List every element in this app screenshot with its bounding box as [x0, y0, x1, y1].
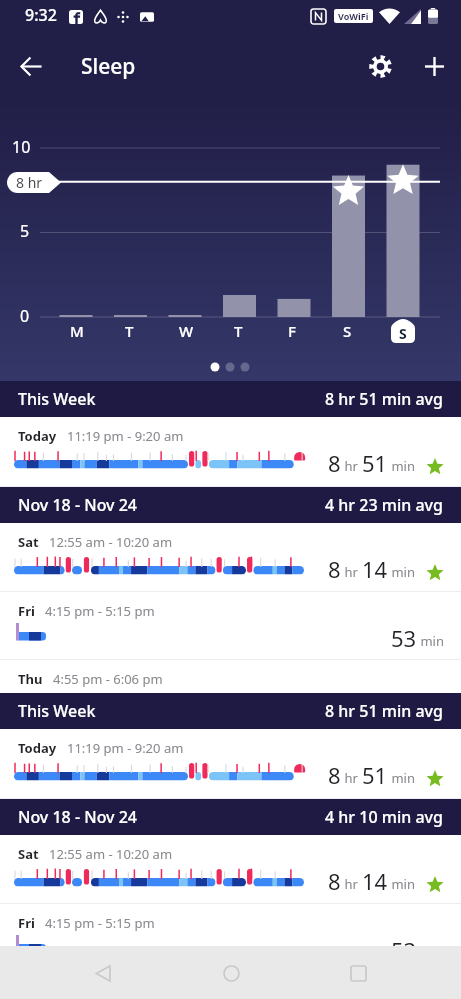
button[interactable]: Back — [9, 44, 53, 88]
staticText: min — [417, 700, 444, 718]
button[interactable]: This Week — [0, 693, 461, 729]
staticText: 8 — [328, 866, 341, 896]
staticText: T — [125, 321, 134, 341]
staticText: hr — [341, 563, 362, 581]
staticText: S — [343, 321, 352, 341]
staticText: hr — [370, 700, 391, 718]
staticText: Sleep — [81, 52, 136, 81]
staticText: 51 — [362, 760, 388, 790]
staticText: Today — [18, 427, 57, 445]
staticText: min — [388, 457, 415, 475]
staticText: min — [417, 632, 444, 650]
staticText: hr — [341, 457, 362, 475]
staticText: 9:32 — [25, 4, 57, 26]
button[interactable]: Nov 18 - Nov 24 — [0, 799, 461, 835]
staticText: T — [234, 321, 243, 341]
staticText: Sat — [18, 533, 39, 551]
staticText: Thu — [18, 670, 43, 688]
staticText: 8 — [328, 448, 341, 478]
staticText: 4 hr 10 min avg — [325, 806, 443, 828]
button[interactable]: Thu — [0, 660, 461, 730]
staticText: 8 hr 51 min avg — [325, 388, 443, 410]
staticText: min — [388, 875, 415, 893]
staticText: Nov 18 - Nov 24 — [18, 494, 137, 516]
staticText: Fri — [18, 914, 35, 932]
button[interactable]: Home — [207, 949, 255, 997]
button[interactable]: Nov 18 - Nov 24 — [0, 487, 461, 523]
button[interactable]: Back — [79, 949, 127, 997]
staticText: 1 — [357, 691, 370, 721]
button[interactable]: 10 — [0, 100, 461, 381]
staticText: 11:19 pm - 9:20 am — [67, 427, 184, 445]
staticText: 5 — [20, 220, 30, 242]
button[interactable]: Settings — [358, 44, 402, 88]
staticText: 53 — [391, 935, 417, 965]
staticText: min — [388, 769, 415, 787]
staticText: 8 — [328, 554, 341, 584]
staticText: F — [288, 321, 296, 341]
staticText: 11:19 pm - 9:20 am — [67, 739, 184, 757]
staticText: 51 — [362, 448, 388, 478]
staticText: 14 — [362, 866, 388, 896]
staticText: 4:55 pm - 6:06 pm — [53, 670, 163, 688]
staticText: This Week — [18, 700, 96, 722]
staticText: VoWiFi — [338, 10, 369, 22]
staticText: hr — [341, 875, 362, 893]
button[interactable]: Sat — [0, 523, 461, 592]
button[interactable]: This Week — [0, 381, 461, 417]
staticText: Nov 18 - Nov 24 — [18, 806, 137, 828]
staticText: Fri — [18, 602, 35, 620]
staticText: 10 — [12, 136, 31, 158]
staticText: 0 — [20, 305, 30, 327]
staticText: W — [179, 321, 194, 341]
staticText: M — [70, 321, 84, 341]
staticText: 12:55 am - 10:20 am — [49, 845, 173, 863]
staticText: 53 — [391, 623, 417, 653]
staticText: 8 hr 51 min avg — [325, 700, 443, 722]
staticText: This Week — [18, 388, 96, 410]
button[interactable]: Add — [412, 44, 456, 88]
button[interactable]: Today — [0, 729, 461, 799]
staticText: min — [388, 563, 415, 581]
button[interactable]: Sat — [0, 835, 461, 904]
staticText: hr — [341, 769, 362, 787]
staticText: 8 hr — [16, 173, 43, 192]
button[interactable]: Fri — [0, 592, 461, 660]
staticText: 4:15 pm - 5:15 pm — [45, 914, 155, 932]
staticText: 12:55 am - 10:20 am — [49, 533, 173, 551]
button[interactable]: Recents — [334, 949, 382, 997]
staticText: 4 hr 23 min avg — [325, 494, 443, 516]
staticText: min — [417, 944, 444, 962]
staticText: 14 — [362, 554, 388, 584]
staticText: 8 — [328, 760, 341, 790]
button[interactable]: Today — [0, 417, 461, 487]
button[interactable]: Fri — [0, 904, 461, 972]
staticText: 11 — [391, 691, 417, 721]
staticText: 4:15 pm - 5:15 pm — [45, 602, 155, 620]
staticText: Today — [18, 739, 57, 757]
staticText: S — [399, 324, 407, 343]
staticText: Sat — [18, 845, 39, 863]
